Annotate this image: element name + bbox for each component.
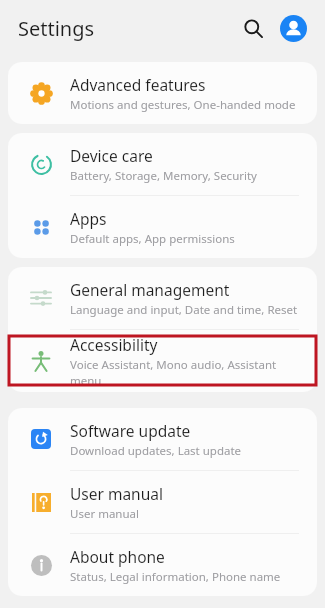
staticText: About phone	[70, 546, 165, 567]
staticText: Motions and gestures, One-handed mode	[70, 97, 296, 113]
button[interactable]: Advanced features	[8, 62, 317, 124]
staticText: Apps	[70, 208, 107, 229]
staticText: General management	[70, 279, 230, 300]
staticText: Voice Assistant, Mono audio, Assistant m…	[70, 357, 303, 389]
button[interactable]: Account	[277, 12, 309, 44]
staticText: Accessibility	[70, 334, 158, 355]
button[interactable]: General management	[8, 267, 317, 329]
staticText: Battery, Storage, Memory, Security	[70, 168, 257, 184]
button[interactable]: User manual	[8, 471, 317, 533]
staticText: User manual	[70, 506, 139, 522]
staticText: Default apps, App permissions	[70, 231, 235, 247]
button[interactable]: Device care	[8, 133, 317, 195]
button[interactable]: Software update	[8, 408, 317, 470]
button[interactable]: Accessibility	[8, 330, 317, 392]
staticText: Language and input, Date and time, Reset	[70, 302, 298, 318]
staticText: User manual	[70, 483, 163, 504]
button[interactable]: Apps	[8, 196, 317, 258]
staticText: Software update	[70, 420, 191, 441]
staticText: Settings	[18, 15, 95, 42]
button[interactable]: About phone	[8, 534, 317, 596]
staticText: Status, Legal information, Phone name	[70, 569, 281, 585]
staticText: Advanced features	[70, 74, 206, 95]
staticText: Device care	[70, 145, 153, 166]
button[interactable]: Search	[237, 12, 269, 44]
staticText: Download updates, Last update	[70, 443, 242, 459]
